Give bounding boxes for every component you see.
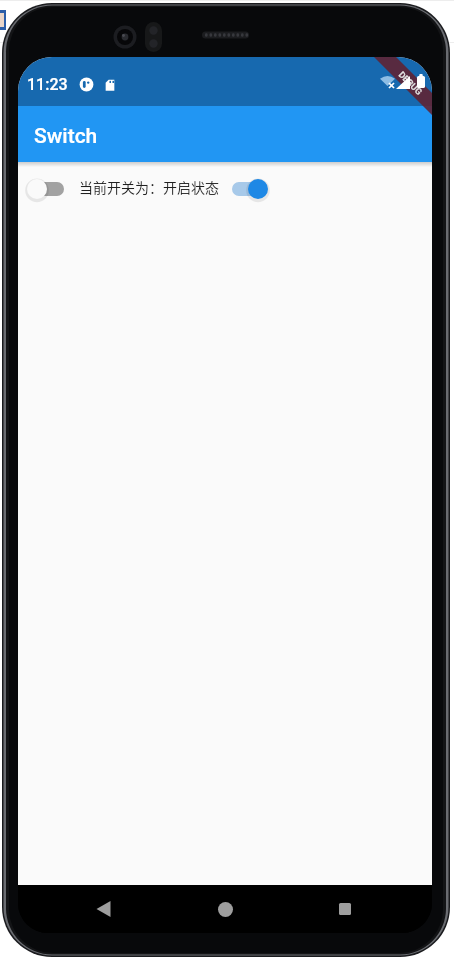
button[interactable]: Back [82,887,126,931]
button[interactable]: Switch off [26,163,70,210]
button[interactable]: Home [203,887,247,931]
staticText: 当前开关为：开启状态 [79,177,219,197]
button[interactable]: Switch on [228,163,272,210]
staticText: DEBUG [396,70,424,98]
staticText: 11:23 [27,75,68,94]
staticText: Switch [34,124,98,149]
button[interactable]: Recent apps [323,887,367,931]
